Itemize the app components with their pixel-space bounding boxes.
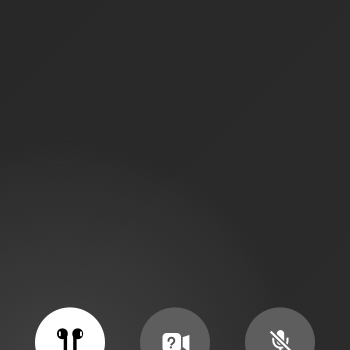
button[interactable]: Unmute microphone: [245, 307, 315, 350]
button[interactable]: AirPods audio output: [35, 307, 105, 350]
button[interactable]: Turn on video: [140, 307, 210, 350]
